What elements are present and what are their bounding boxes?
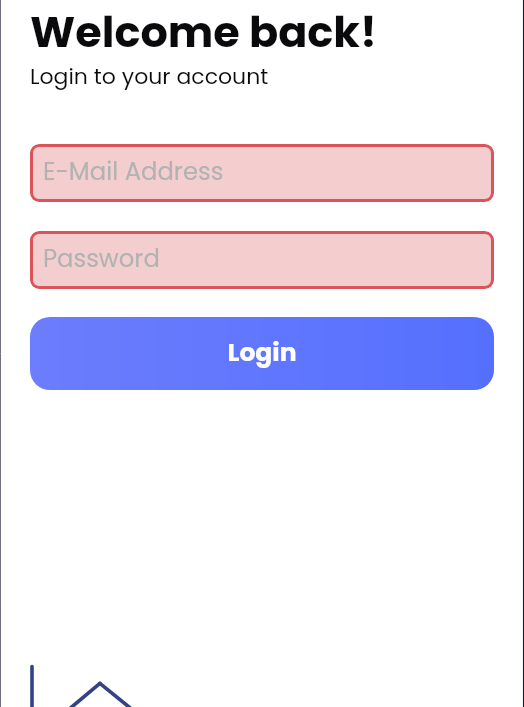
staticText: E-Mail Address <box>43 154 224 188</box>
button[interactable]: Login <box>30 317 494 390</box>
button[interactable]: Back <box>70 666 132 707</box>
staticText: Login <box>227 335 297 370</box>
button[interactable]: Recents <box>18 655 46 707</box>
button[interactable]: E-Mail Address <box>30 144 494 202</box>
button[interactable]: Password <box>30 231 494 289</box>
staticText: Password <box>43 241 160 275</box>
staticText: Welcome back! <box>30 2 377 62</box>
staticText: Login to your account <box>30 61 269 92</box>
